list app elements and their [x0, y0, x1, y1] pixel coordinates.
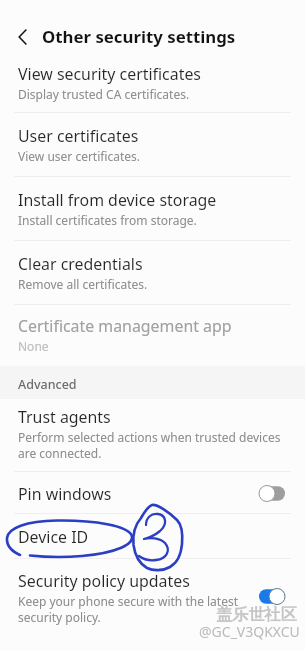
staticText: Keep your phone secure with the latest s…	[18, 593, 239, 625]
staticText: @GC_V3QKXCU	[199, 622, 300, 641]
staticText: Certificate management app	[18, 315, 232, 337]
button[interactable]: Back	[9, 23, 37, 51]
staticText: 盖乐世社区	[216, 604, 297, 624]
button[interactable]: Trust agents	[0, 399, 305, 471]
button[interactable]: Off	[259, 485, 287, 502]
staticText: Trust agents	[18, 406, 111, 428]
staticText: Install from device storage	[18, 189, 217, 211]
staticText: Remove all certificates.	[18, 276, 148, 292]
staticText: Security policy updates	[18, 570, 190, 592]
button[interactable]: Clear credentials	[0, 241, 305, 304]
staticText: View user certificates.	[18, 148, 141, 164]
staticText: Other security settings	[42, 25, 236, 48]
staticText: Advanced	[18, 376, 77, 393]
staticText: Clear credentials	[18, 253, 143, 275]
staticText: User certificates	[18, 125, 139, 147]
button[interactable]: Pin windows	[0, 472, 305, 513]
button[interactable]: Security policy updates	[0, 559, 305, 650]
button[interactable]: Certificate management app	[0, 305, 305, 366]
button[interactable]: View security certificates	[0, 56, 305, 112]
button[interactable]: On	[259, 588, 287, 605]
staticText: Install certificates from storage.	[18, 212, 197, 228]
staticText: Pin windows	[18, 483, 112, 505]
button[interactable]: Install from device storage	[0, 177, 305, 240]
staticText: Device ID	[18, 526, 89, 548]
staticText: None	[18, 338, 49, 354]
staticText: Perform selected actions when trusted de…	[18, 429, 281, 461]
button[interactable]: User certificates	[0, 113, 305, 176]
button[interactable]: Device ID	[0, 514, 305, 558]
staticText: View security certificates	[18, 63, 201, 85]
staticText: Display trusted CA certificates.	[18, 86, 190, 102]
